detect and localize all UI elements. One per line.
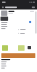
button[interactable]: Item two (18, 33, 25, 34)
button[interactable]: Item one (18, 29, 26, 30)
button[interactable]: New (29, 21, 31, 23)
button[interactable]: Back (2, 6, 4, 8)
button[interactable]: Share (32, 6, 35, 8)
